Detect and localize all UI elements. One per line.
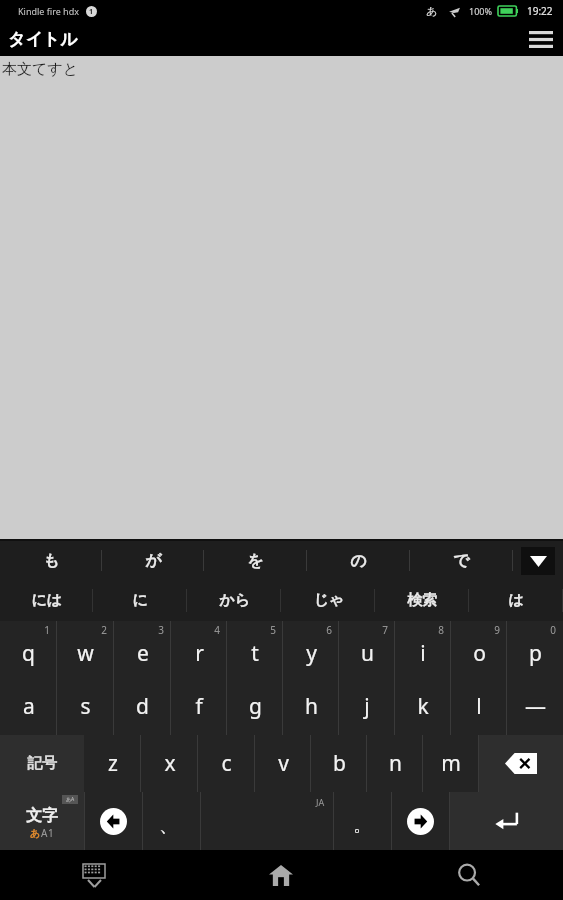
button[interactable]: 記号 — [0, 735, 84, 792]
staticText: x — [164, 749, 176, 778]
staticText: t — [251, 639, 259, 668]
button[interactable]: を — [204, 541, 307, 580]
button[interactable]: 、 — [143, 792, 200, 850]
button[interactable]: v — [255, 735, 311, 792]
button[interactable]: じゃ — [281, 580, 375, 621]
button[interactable]: が — [102, 541, 204, 580]
button[interactable]: a — [0, 678, 57, 735]
staticText: 1 — [89, 7, 94, 17]
staticText: じゃ — [313, 591, 344, 610]
staticText: y — [306, 639, 317, 668]
staticText: 0 — [550, 623, 556, 637]
staticText: JA — [316, 796, 325, 808]
staticText: 4 — [214, 623, 220, 637]
staticText: に — [132, 591, 148, 610]
staticText: j — [364, 692, 370, 721]
button[interactable]: c — [198, 735, 255, 792]
staticText: z — [108, 749, 118, 778]
staticText: a — [23, 692, 35, 721]
staticText: f — [195, 692, 203, 721]
button[interactable]: Move cursor left — [85, 792, 142, 850]
button[interactable]: d — [114, 678, 171, 735]
staticText: n — [389, 749, 402, 778]
staticText: c — [221, 749, 232, 778]
staticText: d — [136, 692, 149, 721]
staticText: も — [43, 551, 60, 571]
button[interactable]: 5 — [227, 621, 283, 678]
staticText: が — [145, 551, 162, 571]
staticText: 。 — [353, 813, 372, 837]
button[interactable]: Expand suggestions — [513, 541, 563, 580]
staticText: タイトル — [8, 29, 78, 50]
button[interactable]: は — [469, 580, 563, 621]
button[interactable]: 1 — [0, 621, 57, 678]
staticText: q — [22, 639, 35, 668]
button[interactable]: f — [171, 678, 227, 735]
button[interactable]: の — [307, 541, 410, 580]
button[interactable]: Space — [201, 792, 333, 850]
staticText: k — [417, 692, 429, 721]
button[interactable]: も — [0, 541, 102, 580]
button[interactable]: に — [93, 580, 187, 621]
staticText: 文字 — [26, 806, 58, 826]
button[interactable]: h — [283, 678, 339, 735]
button[interactable]: 3 — [114, 621, 171, 678]
button[interactable]: 8 — [395, 621, 451, 678]
staticText: u — [361, 639, 374, 668]
button[interactable]: Home — [187, 850, 375, 900]
button[interactable]: には — [0, 580, 93, 621]
staticText: l — [476, 692, 482, 721]
staticText: 、 — [159, 814, 178, 838]
button[interactable]: Backspace — [479, 735, 563, 792]
staticText: o — [473, 639, 486, 668]
button[interactable]: m — [423, 735, 479, 792]
staticText: 100% — [469, 5, 492, 17]
staticText: e — [137, 639, 149, 668]
button[interactable]: — — [507, 678, 563, 735]
staticText: h — [305, 692, 318, 721]
staticText: は — [508, 591, 524, 610]
button[interactable]: Hide keyboard — [0, 850, 187, 900]
button[interactable]: g — [227, 678, 283, 735]
button[interactable]: n — [367, 735, 423, 792]
button[interactable]: b — [311, 735, 367, 792]
button[interactable]: あA — [0, 792, 84, 850]
staticText: 検索 — [407, 591, 437, 610]
staticText: v — [278, 749, 289, 778]
staticText: i — [420, 639, 426, 668]
staticText: を — [247, 551, 264, 571]
staticText: 19:22 — [527, 4, 553, 18]
button[interactable]: 0 — [507, 621, 563, 678]
staticText: の — [350, 551, 367, 571]
staticText: あ — [30, 827, 41, 840]
button[interactable]: z — [84, 735, 141, 792]
staticText: 3 — [158, 623, 164, 637]
button[interactable]: Move cursor right — [392, 792, 449, 850]
staticText: から — [219, 591, 250, 610]
button[interactable]: x — [141, 735, 198, 792]
button[interactable]: 2 — [57, 621, 114, 678]
button[interactable]: l — [451, 678, 507, 735]
button[interactable]: j — [339, 678, 395, 735]
button[interactable]: Search — [375, 850, 563, 900]
button[interactable]: 検索 — [375, 580, 469, 621]
button[interactable]: k — [395, 678, 451, 735]
staticText: 2 — [101, 623, 107, 637]
button[interactable]: から — [187, 580, 281, 621]
staticText: m — [441, 749, 461, 778]
button[interactable]: 。 — [334, 792, 391, 850]
staticText: 7 — [382, 623, 388, 637]
button[interactable]: Menu — [519, 22, 563, 56]
button[interactable]: s — [57, 678, 114, 735]
button[interactable]: 6 — [283, 621, 339, 678]
staticText: A — [41, 826, 48, 840]
staticText: s — [80, 692, 91, 721]
button[interactable]: Enter — [450, 792, 563, 850]
staticText: 記号 — [27, 754, 57, 773]
button[interactable]: 4 — [171, 621, 227, 678]
staticText: 8 — [438, 623, 444, 637]
staticText: 本文てすと — [2, 60, 79, 79]
button[interactable]: で — [410, 541, 513, 580]
button[interactable]: 7 — [339, 621, 395, 678]
button[interactable]: 9 — [451, 621, 507, 678]
